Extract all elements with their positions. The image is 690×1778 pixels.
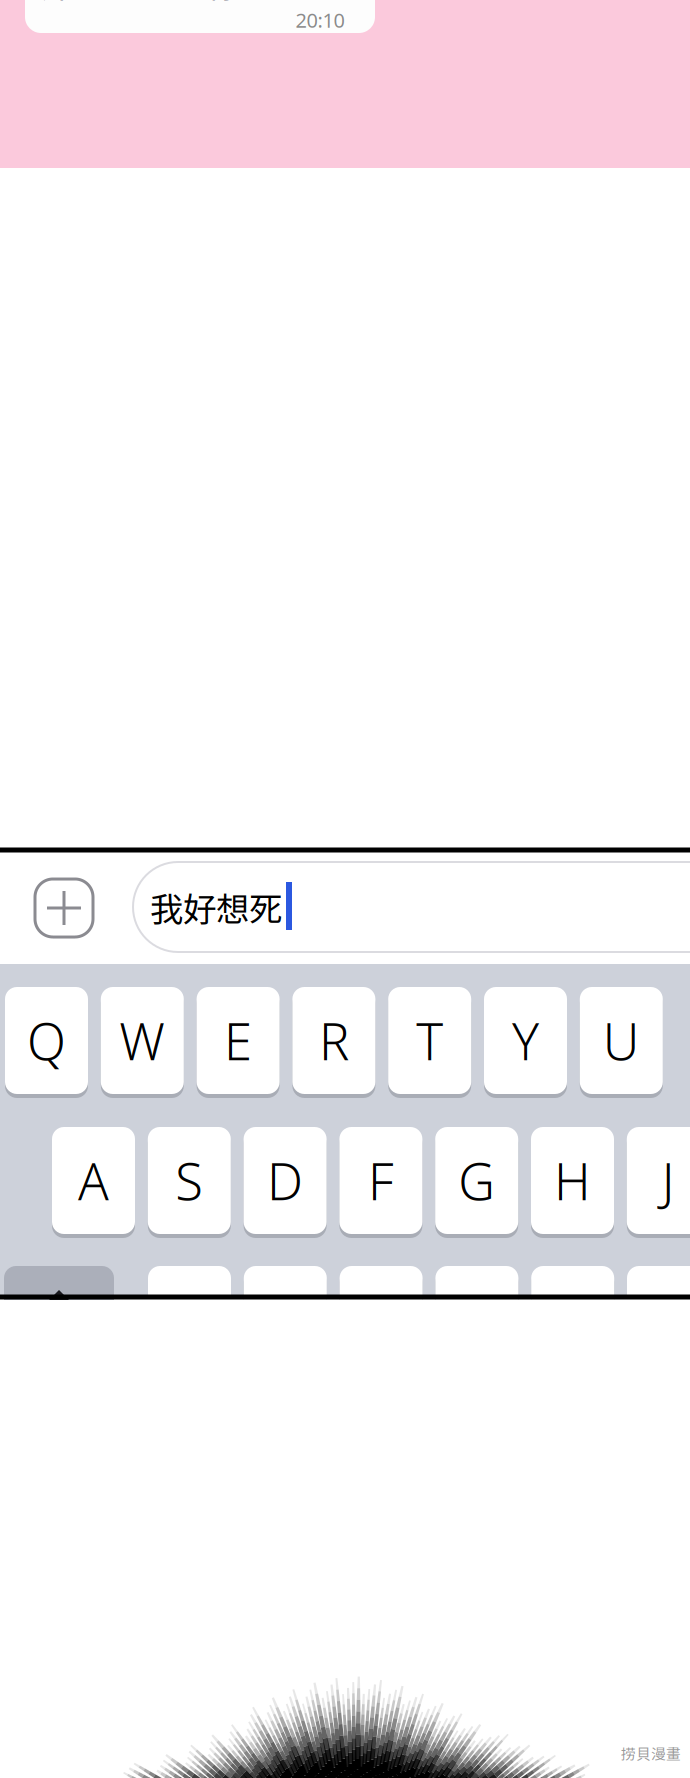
button[interactable] — [244, 1264, 327, 1338]
button[interactable]: Y — [484, 985, 567, 1096]
staticText: R — [319, 1006, 349, 1075]
button[interactable] — [340, 1264, 423, 1338]
button[interactable]: F — [339, 1125, 422, 1236]
staticText: Q — [27, 1006, 66, 1075]
button[interactable]: D — [244, 1125, 327, 1236]
button[interactable]: 我好想死 — [133, 862, 690, 952]
button[interactable]: T — [388, 985, 471, 1096]
button[interactable] — [4, 1264, 114, 1338]
staticText: 我好想死 — [150, 883, 282, 931]
staticText: D — [267, 1146, 303, 1215]
staticText: W — [119, 1006, 165, 1075]
staticText: S — [175, 1146, 203, 1215]
staticText: 捞貝漫畫 — [621, 1742, 681, 1764]
staticText: E — [224, 1006, 252, 1075]
button[interactable]: A — [52, 1125, 135, 1236]
button[interactable]: Add attachment — [35, 879, 93, 937]
staticText: F — [368, 1146, 394, 1215]
button[interactable] — [531, 1264, 614, 1338]
staticText: A — [78, 1146, 109, 1215]
staticText: J — [662, 1146, 675, 1215]
button[interactable]: Q — [5, 985, 88, 1096]
staticText: G — [458, 1146, 495, 1215]
button[interactable]: R — [292, 985, 375, 1096]
staticText: 20:10 — [295, 6, 344, 34]
staticText: T — [416, 1006, 443, 1075]
button[interactable] — [435, 1264, 518, 1338]
button[interactable] — [627, 1264, 690, 1338]
staticText: U — [603, 1006, 640, 1075]
button[interactable]: S — [148, 1125, 231, 1236]
button[interactable]: H — [531, 1125, 614, 1236]
button[interactable]: U — [580, 985, 663, 1096]
button[interactable] — [148, 1264, 231, 1338]
staticText: 那妳還想怎樣 — [41, 0, 239, 7]
button[interactable]: E — [197, 985, 280, 1096]
button[interactable]: J — [627, 1125, 690, 1236]
button[interactable]: W — [101, 985, 184, 1096]
button[interactable]: G — [435, 1125, 518, 1236]
staticText: H — [554, 1146, 591, 1215]
staticText: Y — [512, 1006, 539, 1075]
